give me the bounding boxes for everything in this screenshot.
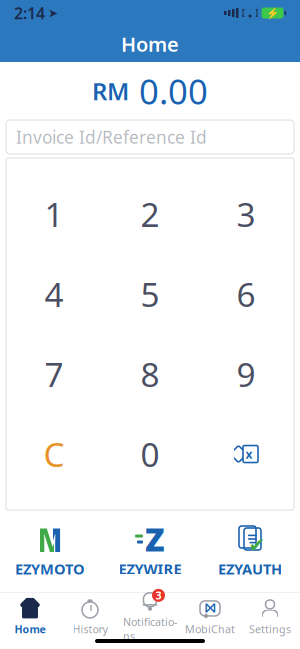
staticText: 3 — [236, 192, 255, 236]
staticText: 8 — [140, 352, 159, 396]
button[interactable]: ✔ — [200, 516, 300, 586]
button[interactable]: 2 — [102, 174, 198, 254]
staticText: 6 — [236, 272, 255, 316]
button[interactable]: 4 — [6, 254, 102, 334]
staticText: Settings — [249, 622, 291, 636]
staticText: 1 — [44, 192, 63, 236]
staticText: ➤ — [48, 6, 58, 20]
button[interactable]: 8 — [102, 334, 198, 414]
button[interactable]: Z — [100, 516, 200, 586]
staticText: History — [72, 622, 107, 636]
staticText: x — [245, 446, 252, 462]
staticText: MobiChat — [185, 622, 235, 636]
button[interactable]: Delete — [198, 414, 294, 494]
button[interactable]: 6 — [198, 254, 294, 334]
staticText: 3 — [155, 588, 161, 602]
button[interactable]: 0 — [102, 414, 198, 494]
staticText: 0 — [140, 432, 159, 476]
staticText: 5 — [140, 272, 159, 316]
staticText: 4 — [44, 272, 63, 316]
staticText: Invoice Id/Reference Id — [16, 125, 207, 148]
staticText: Z — [145, 518, 165, 560]
button[interactable]: M — [0, 516, 100, 586]
staticText: ⚡ — [266, 7, 279, 19]
button[interactable]: History — [60, 592, 120, 636]
staticText: ⨝ — [204, 602, 215, 615]
staticText: 9 — [236, 352, 255, 396]
staticText: Notifications — [123, 615, 177, 643]
button[interactable]: 7 — [6, 334, 102, 414]
staticText: M — [36, 516, 69, 562]
button[interactable]: C — [6, 414, 102, 494]
staticText: ✔ — [248, 534, 265, 556]
button[interactable]: 3 — [120, 585, 180, 643]
staticText: RM — [92, 75, 129, 107]
staticText: 2 — [140, 192, 159, 236]
button[interactable]: Settings — [240, 592, 300, 636]
staticText: 0.00 — [139, 68, 208, 114]
staticText: M — [30, 516, 63, 562]
staticText: C — [43, 432, 64, 476]
staticText: 7 — [44, 352, 63, 396]
staticText: Home — [14, 622, 45, 636]
staticText: 2:14 — [14, 2, 45, 24]
button[interactable]: 5 — [102, 254, 198, 334]
button[interactable]: ⨝ — [180, 592, 240, 636]
button[interactable]: Home — [0, 592, 60, 636]
staticText: EZYAUTH — [218, 559, 282, 578]
staticText: EZYMOTO — [15, 559, 85, 578]
button[interactable]: 1 — [6, 174, 102, 254]
button[interactable]: 9 — [198, 334, 294, 414]
staticText: Home — [121, 31, 179, 57]
button[interactable]: Invoice Id/Reference Id — [6, 120, 294, 154]
staticText: EZYWIRE — [118, 559, 181, 578]
button[interactable]: 3 — [198, 174, 294, 254]
